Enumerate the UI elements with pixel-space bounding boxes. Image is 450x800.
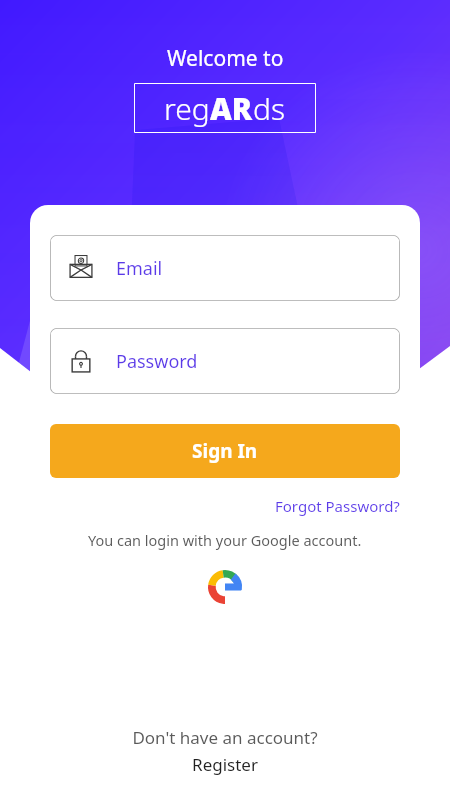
staticText: Password — [116, 349, 198, 374]
staticText: Don't have an account? — [132, 726, 318, 749]
staticText: Forgot Password? — [275, 496, 400, 516]
button[interactable]: Forgot Password? — [275, 496, 400, 516]
button[interactable]: Email — [50, 235, 400, 301]
button[interactable]: Password — [50, 328, 400, 394]
staticText: Welcome to — [167, 44, 284, 73]
staticText: Register — [192, 753, 258, 776]
button[interactable]: Sign in with Google — [205, 567, 245, 607]
button[interactable]: Register — [192, 753, 258, 776]
staticText: reg — [164, 88, 210, 129]
button[interactable]: Sign In — [50, 424, 400, 478]
staticText: Email — [116, 256, 163, 281]
staticText: You can login with your Google account. — [88, 530, 362, 550]
staticText: AR — [210, 88, 253, 129]
staticText: Sign In — [192, 438, 258, 464]
staticText: ds — [253, 88, 286, 129]
